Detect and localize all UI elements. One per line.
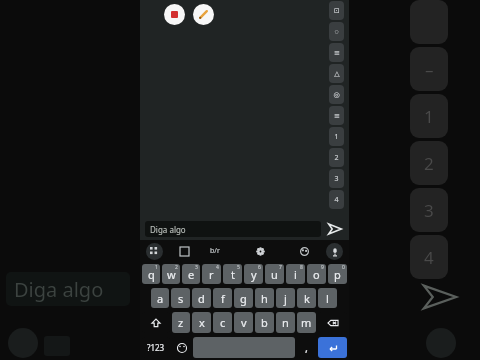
button[interactable]: d <box>192 288 211 308</box>
staticText: 4 <box>216 264 219 271</box>
button[interactable]: Translate <box>206 242 224 260</box>
button[interactable]: Keyboard menu <box>146 243 163 260</box>
button[interactable]: h <box>255 288 274 308</box>
button[interactable]: r <box>202 264 221 284</box>
button[interactable]: Backspace <box>318 312 347 333</box>
staticText: n <box>282 315 289 330</box>
staticText: ?123 <box>147 342 165 353</box>
button[interactable]: x <box>192 312 211 333</box>
button[interactable]: Edit <box>193 4 214 25</box>
button[interactable]: ≡ <box>329 106 344 125</box>
button[interactable]: l <box>318 288 337 308</box>
button[interactable] <box>193 337 295 358</box>
staticText: ◌ <box>334 27 339 37</box>
staticText: i <box>294 267 297 282</box>
staticText: q <box>148 267 155 282</box>
staticText: u <box>271 267 278 282</box>
staticText: l <box>326 291 329 306</box>
button[interactable]: ≡ <box>329 43 344 62</box>
staticText: b <box>261 315 268 330</box>
staticText: b/r <box>210 246 220 256</box>
staticText: 2 <box>424 152 434 175</box>
staticText: c <box>220 315 226 330</box>
staticText: 7 <box>279 264 282 271</box>
staticText: j <box>284 291 287 306</box>
staticText: Diga algo <box>14 276 104 303</box>
staticText: g <box>240 291 247 306</box>
staticText: p <box>334 267 341 282</box>
button[interactable]: y <box>244 264 263 284</box>
button[interactable]: 4 <box>329 190 344 209</box>
staticText: 1 <box>334 132 339 142</box>
staticText: 4 <box>424 246 434 269</box>
button[interactable]: 2 <box>329 148 344 167</box>
button[interactable]: n <box>276 312 295 333</box>
staticText: d <box>198 291 205 306</box>
staticText: 1 <box>424 105 434 128</box>
button[interactable]: m <box>297 312 316 333</box>
staticText: 2 <box>334 153 339 163</box>
staticText: 3 <box>424 199 434 222</box>
button[interactable]: p <box>328 264 347 284</box>
staticText: y <box>251 267 257 282</box>
staticText: f <box>221 291 225 306</box>
button[interactable]: ?123 <box>142 337 170 358</box>
button[interactable]: c <box>213 312 232 333</box>
staticText: – <box>425 58 434 81</box>
staticText: a <box>157 291 164 306</box>
button[interactable]: Diga algo <box>145 221 321 237</box>
button[interactable]: w <box>162 264 180 284</box>
button[interactable]: Themes <box>296 243 312 259</box>
button[interactable]: v <box>234 312 253 333</box>
staticText: △ <box>334 70 340 78</box>
button[interactable]: Emoji <box>172 337 191 358</box>
staticText: ◎ <box>333 91 340 99</box>
button[interactable]: g <box>234 288 253 308</box>
button[interactable]: 1 <box>329 127 344 146</box>
button[interactable]: △ <box>329 64 344 83</box>
button[interactable]: o <box>307 264 326 284</box>
button[interactable]: Voice input <box>326 243 343 260</box>
button[interactable]: q <box>142 264 160 284</box>
staticText: m <box>301 315 312 330</box>
button[interactable]: i <box>286 264 305 284</box>
button[interactable]: Stop recording <box>164 4 185 25</box>
button[interactable]: Clipboard <box>176 243 192 259</box>
button[interactable]: ⊡ <box>329 1 344 20</box>
staticText: 3 <box>334 174 339 184</box>
button[interactable]: s <box>171 288 190 308</box>
button[interactable]: Settings <box>252 243 268 259</box>
button[interactable]: Shift <box>142 312 170 333</box>
staticText: ≡ <box>334 112 340 120</box>
staticText: z <box>178 315 184 330</box>
staticText: , <box>305 340 308 355</box>
staticText: 8 <box>300 264 303 271</box>
staticText: r <box>209 267 214 282</box>
button[interactable]: 3 <box>329 169 344 188</box>
button[interactable]: ◎ <box>329 85 344 104</box>
staticText: 2 <box>175 264 178 271</box>
staticText: 6 <box>258 264 261 271</box>
button[interactable]: a <box>151 288 169 308</box>
staticText: k <box>304 291 310 306</box>
button[interactable]: b <box>255 312 274 333</box>
button[interactable]: , <box>297 337 316 358</box>
staticText: h <box>261 291 268 306</box>
button[interactable]: t <box>223 264 242 284</box>
button[interactable]: j <box>276 288 295 308</box>
button[interactable]: Send <box>326 220 344 238</box>
staticText: 5 <box>237 264 240 271</box>
button[interactable]: u <box>265 264 284 284</box>
button[interactable]: k <box>297 288 316 308</box>
button[interactable]: Enter <box>318 337 347 358</box>
staticText: Diga algo <box>150 224 186 235</box>
button[interactable]: e <box>182 264 200 284</box>
button[interactable]: f <box>213 288 232 308</box>
staticText: x <box>199 315 205 330</box>
staticText: 9 <box>321 264 324 271</box>
staticText: 4 <box>334 195 339 205</box>
staticText: v <box>241 315 247 330</box>
button[interactable]: ◌ <box>329 22 344 41</box>
staticText: w <box>167 267 176 282</box>
button[interactable]: z <box>172 312 190 333</box>
